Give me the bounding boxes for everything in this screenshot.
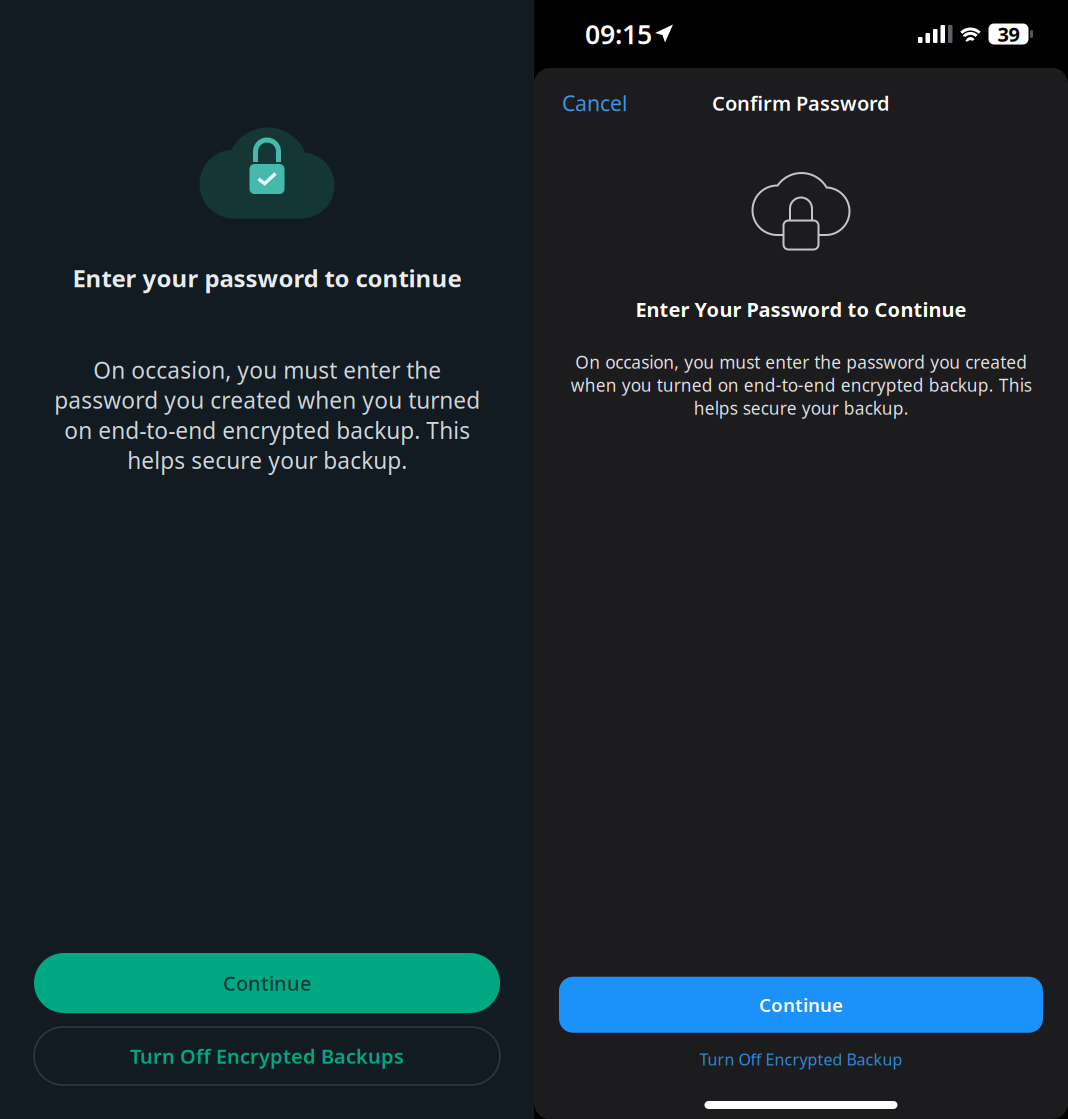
button[interactable]: Continue: [559, 977, 1043, 1033]
staticText: Turn Off Encrypted Backup: [699, 1049, 902, 1070]
staticText: 09:15: [585, 16, 652, 52]
staticText: Confirm Password: [712, 90, 890, 116]
button[interactable]: Cancel: [558, 81, 632, 125]
staticText: 39: [997, 21, 1019, 47]
staticText: On occasion, you must enter the password…: [570, 351, 1031, 420]
staticText: Enter your password to continue: [72, 262, 461, 294]
staticText: Continue: [223, 970, 311, 996]
button[interactable]: Turn Off Encrypted Backups: [34, 1027, 500, 1085]
staticText: Cancel: [562, 89, 628, 117]
staticText: Continue: [759, 992, 843, 1017]
staticText: Turn Off Encrypted Backups: [130, 1043, 404, 1069]
staticText: Enter Your Password to Continue: [635, 296, 966, 323]
button[interactable]: Turn Off Encrypted Backup: [687, 1043, 914, 1076]
staticText: On occasion, you must enter the password…: [54, 355, 480, 475]
button[interactable]: Continue: [34, 953, 500, 1013]
